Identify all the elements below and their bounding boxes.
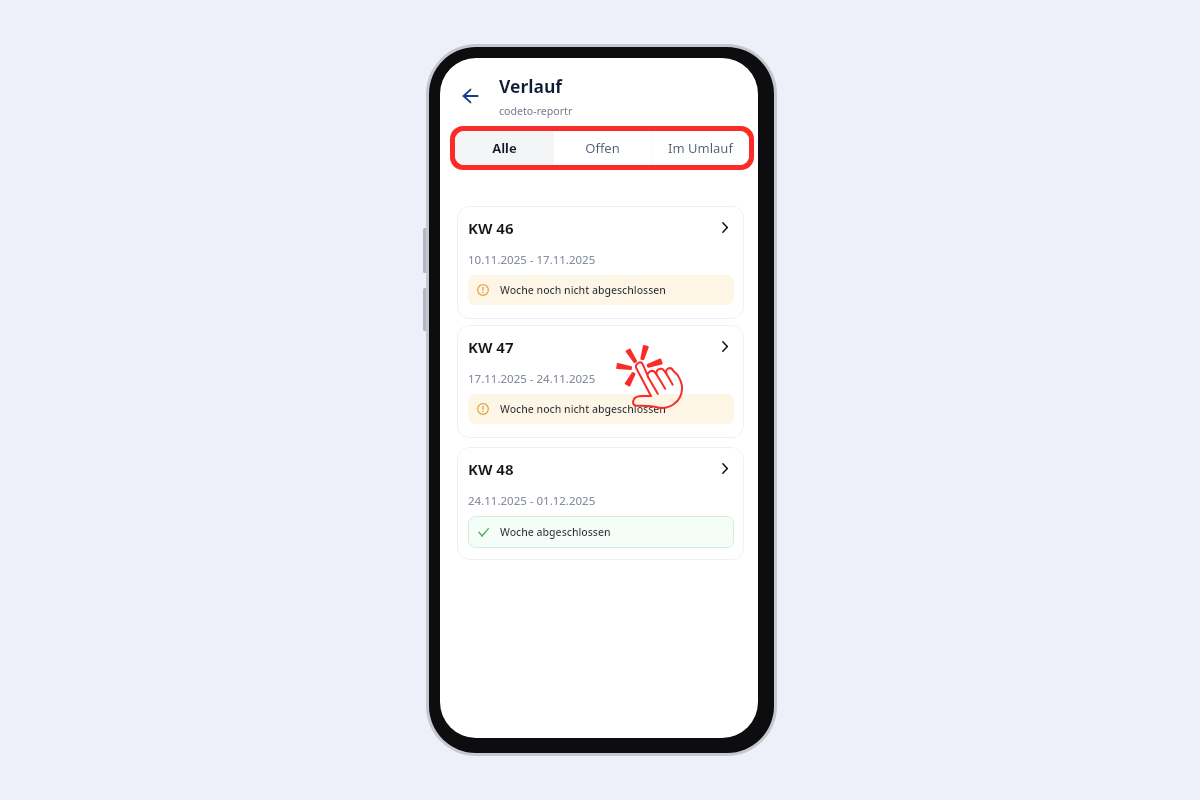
staticText: Woche abgeschlossen (500, 525, 611, 539)
button[interactable]: Open week (715, 217, 735, 237)
staticText: Offen (585, 139, 620, 157)
button[interactable]: Back (455, 81, 485, 111)
staticText: KW 48 (468, 459, 514, 479)
staticText: Alle (492, 139, 517, 157)
staticText: 24.11.2025 - 01.12.2025 (468, 493, 596, 509)
staticText: KW 47 (468, 337, 514, 357)
staticText: Woche noch nicht abgeschlossen (500, 283, 666, 297)
staticText: 10.11.2025 - 17.11.2025 (468, 252, 596, 268)
button[interactable]: KW 47 (457, 325, 744, 438)
staticText: Verlauf (499, 74, 563, 98)
button[interactable]: Alle (455, 131, 553, 165)
staticText: Im Umlauf (668, 139, 733, 157)
staticText: codeto-reportr (499, 104, 573, 118)
button[interactable]: Open week (715, 458, 735, 478)
staticText: Woche noch nicht abgeschlossen (500, 402, 666, 416)
staticText: 17.11.2025 - 24.11.2025 (468, 371, 596, 387)
button[interactable]: KW 46 (457, 206, 744, 319)
button[interactable]: KW 48 (457, 447, 744, 560)
button[interactable]: Im Umlauf (652, 131, 749, 165)
button[interactable]: Open week (715, 336, 735, 356)
staticText: KW 46 (468, 218, 514, 238)
button[interactable]: Offen (554, 131, 651, 165)
